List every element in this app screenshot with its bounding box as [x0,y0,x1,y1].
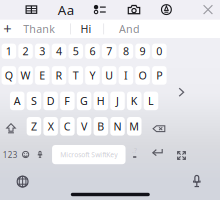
staticText: V [81,119,87,133]
button[interactable]: T [68,66,83,85]
staticText: 123 [3,150,18,160]
button[interactable]: U [102,66,116,85]
staticText: 9 [140,44,146,58]
staticText: H [97,94,105,108]
button[interactable]: 9 [135,44,150,59]
staticText: D [47,94,55,108]
button[interactable]: W [18,66,33,85]
staticText: L [148,94,154,108]
button[interactable]: F [60,92,75,110]
staticText: And [119,22,140,36]
button[interactable]: H [94,92,108,110]
staticText: 2 [23,44,29,58]
button[interactable]: N [110,117,125,136]
button[interactable]: Switch keyboard [12,172,34,192]
staticText: N [113,119,121,133]
staticText: 4 [56,44,62,58]
button[interactable]: 5 [68,44,83,59]
staticText: 8 [123,44,129,58]
staticText: I [124,68,128,82]
button[interactable]: 7 [102,44,116,59]
button[interactable]: 2 [18,44,33,59]
staticText: .? [132,146,137,155]
button[interactable]: O [135,66,150,85]
button[interactable]: 4 [52,44,66,59]
staticText: F [64,94,70,108]
staticText: G [80,94,88,108]
staticText: P [156,68,162,82]
button[interactable]: J [110,92,125,110]
button[interactable]: Resize keyboard [172,146,190,164]
staticText: O [139,68,147,82]
button[interactable]: Camera [121,0,147,19]
button[interactable]: Emoji [18,145,34,163]
button[interactable]: Punctuation [126,145,142,163]
button[interactable]: Q [2,66,16,85]
staticText: 3 [39,44,45,58]
staticText: E [39,68,45,82]
button[interactable]: Z [27,117,41,136]
button[interactable]: And [112,20,148,38]
button[interactable]: I [119,66,133,85]
button[interactable]: L [144,92,158,110]
staticText: 0 [156,44,162,58]
staticText: A [14,94,21,108]
staticText: W [21,68,31,82]
staticText: K [131,94,138,108]
button[interactable]: Return [148,143,166,161]
button[interactable]: A [10,92,24,110]
staticText: Z [31,119,37,133]
button[interactable]: V [77,117,91,136]
button[interactable]: Close [195,0,220,19]
staticText: 5 [73,44,79,58]
staticText: U [105,68,113,82]
button[interactable]: 123 [0,146,20,164]
button[interactable]: 1 [2,44,16,59]
button[interactable]: K [127,92,141,110]
staticText: Thank [23,22,55,36]
button[interactable]: Aa [53,1,79,19]
button[interactable]: 0 [152,44,167,59]
staticText: T [73,68,79,82]
button[interactable]: Shift [1,119,21,138]
staticText: 6 [89,44,95,58]
button[interactable]: Hi [72,20,100,38]
button[interactable]: Markup [153,0,179,19]
staticText: B [97,119,104,133]
button[interactable]: C [60,117,75,136]
button[interactable]: Dictate [186,171,208,191]
button[interactable]: 6 [85,44,100,59]
button[interactable]: Next [172,83,190,101]
staticText: J [116,94,119,108]
button[interactable]: Delete [149,119,169,138]
staticText: 7 [106,44,112,58]
button[interactable]: Microsoft SwiftKey [52,145,125,164]
staticText: Q [5,68,13,82]
button[interactable]: Add [0,20,16,38]
button[interactable]: R [52,66,66,85]
staticText: S [31,94,37,108]
button[interactable]: 3 [35,44,49,59]
button[interactable]: Dictate [32,145,48,163]
button[interactable]: E [35,66,49,85]
button[interactable]: S [27,92,41,110]
button[interactable]: M [127,117,141,136]
button[interactable]: Y [85,66,100,85]
staticText: Y [89,68,95,82]
button[interactable]: Table [18,0,44,19]
button[interactable]: P [152,66,167,85]
button[interactable]: B [94,117,108,136]
button[interactable]: Checklist [87,0,113,19]
staticText: X [48,119,54,133]
staticText: R [55,68,62,82]
staticText: 1 [6,44,12,58]
button[interactable]: G [77,92,91,110]
staticText: Hi [80,22,91,36]
button[interactable]: X [43,117,58,136]
button[interactable]: Thank [17,20,61,38]
staticText: Aa [58,1,74,19]
staticText: + [3,19,11,38]
button[interactable]: D [43,92,58,110]
staticText: Microsoft SwiftKey [60,150,117,159]
button[interactable]: 8 [119,44,133,59]
